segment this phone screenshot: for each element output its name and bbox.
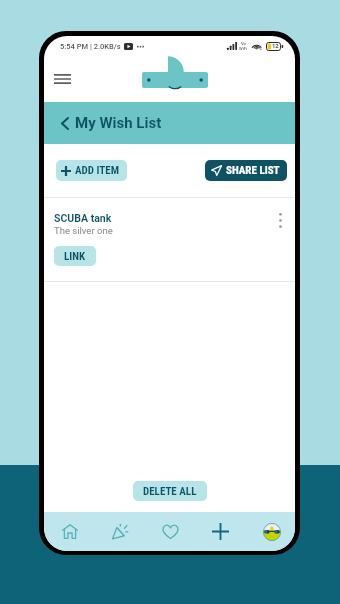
staticText: 12 bbox=[272, 43, 279, 50]
staticText: ADD ITEM bbox=[75, 164, 120, 177]
button[interactable]: Menu bbox=[48, 65, 76, 93]
button[interactable]: DELETE ALL bbox=[133, 481, 207, 501]
button[interactable]: ADD ITEM bbox=[56, 160, 127, 181]
button[interactable]: Back bbox=[57, 112, 79, 134]
staticText: 5:54 PM | 2.0KB/s bbox=[60, 42, 121, 51]
button[interactable]: More options bbox=[272, 212, 288, 228]
staticText: DELETE ALL bbox=[143, 485, 197, 498]
button[interactable]: Home bbox=[44, 512, 95, 551]
button[interactable]: Add item bbox=[195, 512, 245, 551]
button[interactable]: Celebrations bbox=[95, 512, 145, 551]
staticText: Vo bbox=[241, 41, 247, 46]
staticText: LINK bbox=[64, 250, 86, 263]
button[interactable]: Favorites bbox=[145, 512, 195, 551]
button[interactable]: LINK bbox=[54, 246, 96, 266]
staticText: WiFi bbox=[239, 46, 248, 51]
staticText: The silver one bbox=[54, 225, 113, 236]
button[interactable]: SHARE LIST bbox=[205, 160, 287, 181]
staticText: My Wish List bbox=[75, 114, 162, 132]
button[interactable]: SCUBA tank bbox=[44, 198, 295, 281]
staticText: SHARE LIST bbox=[226, 164, 280, 177]
button[interactable]: Profile bbox=[245, 512, 295, 551]
staticText: SCUBA tank bbox=[54, 212, 112, 224]
